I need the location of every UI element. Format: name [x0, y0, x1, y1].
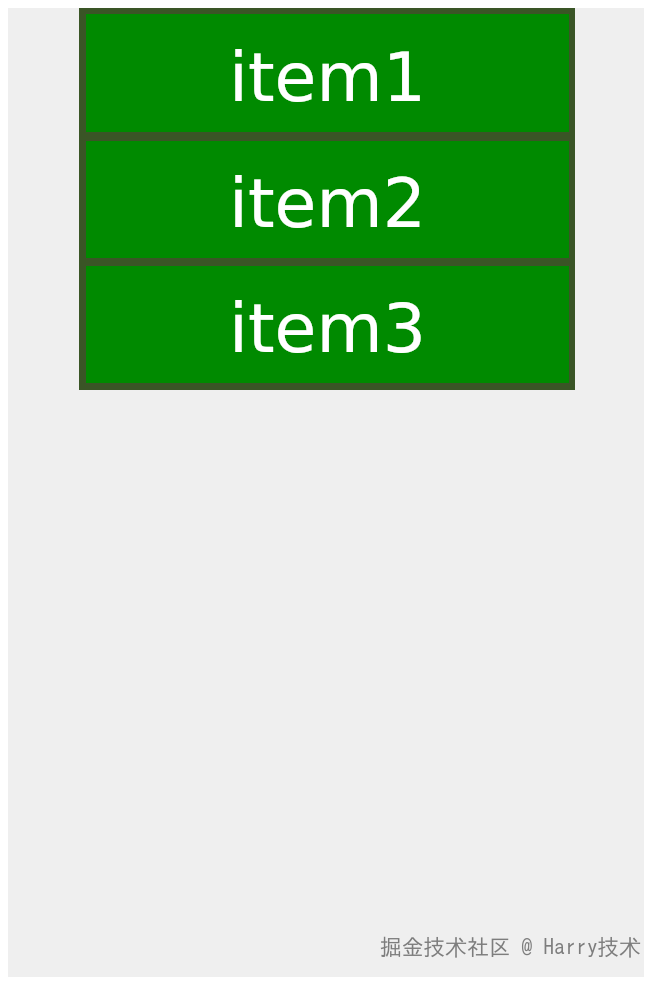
button[interactable]: item3: [86, 266, 569, 383]
button[interactable]: item2: [86, 141, 569, 258]
staticText: item3: [229, 289, 426, 368]
staticText: item2: [229, 164, 426, 243]
staticText: 掘金技术社区 @ Harry技术: [380, 934, 641, 961]
button[interactable]: item1: [86, 14, 569, 132]
staticText: item1: [229, 38, 426, 117]
